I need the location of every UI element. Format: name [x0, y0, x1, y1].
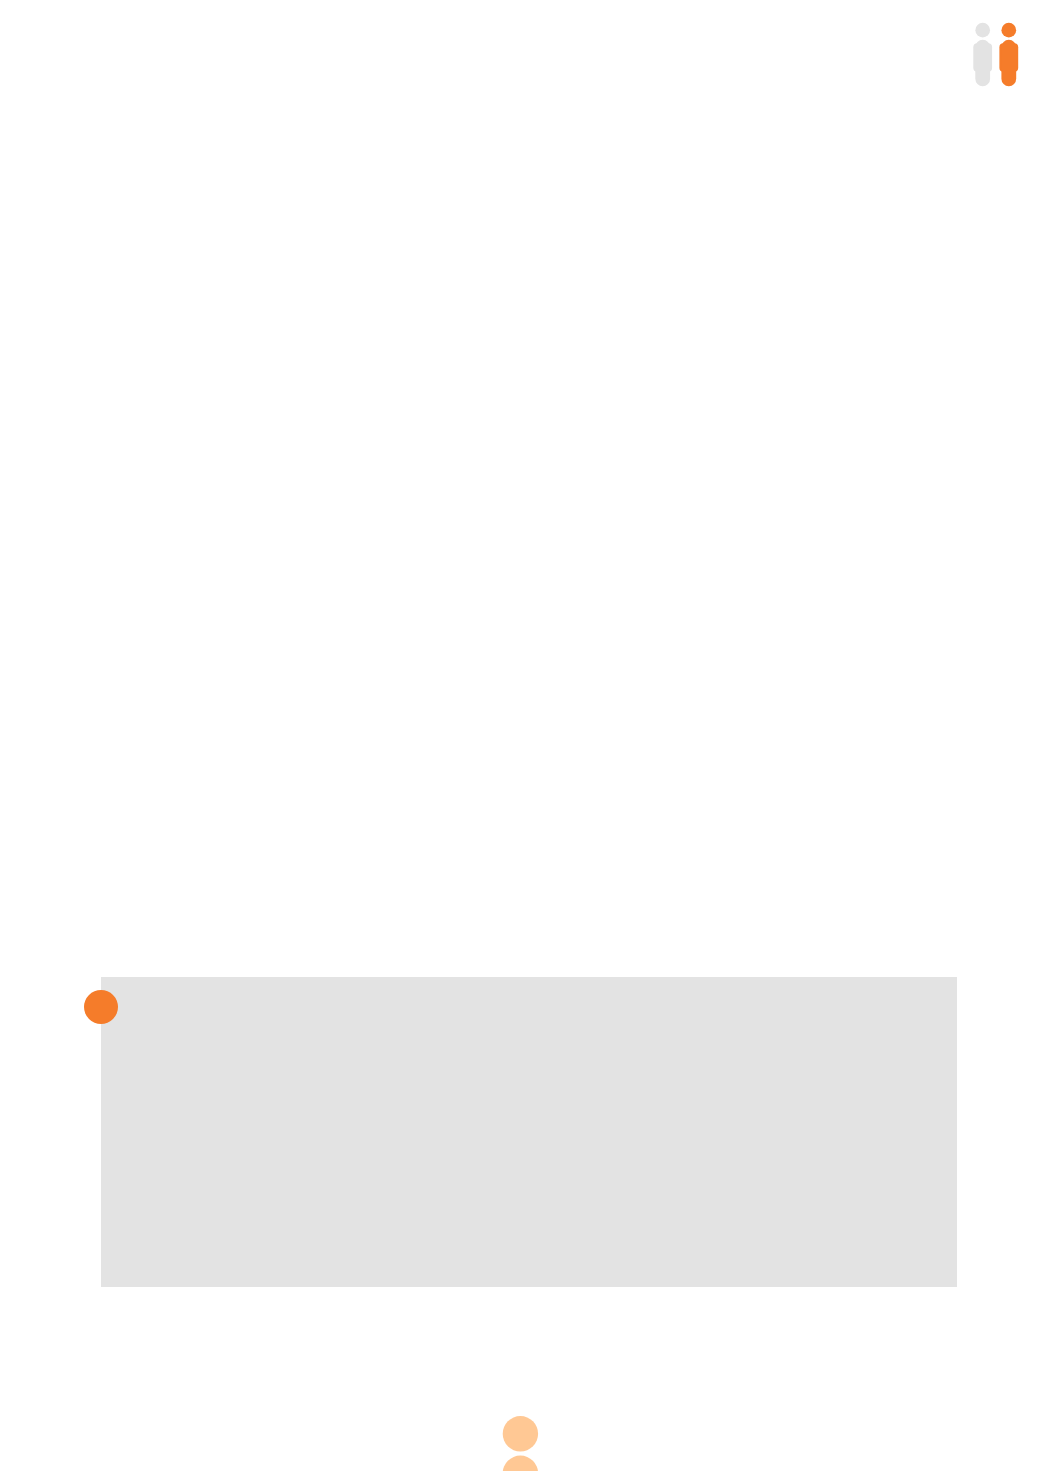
button[interactable]: Status — [84, 990, 118, 1024]
button[interactable]: Content — [101, 977, 957, 1287]
button[interactable]: Contacts — [960, 12, 1036, 96]
button[interactable]: Profile — [440, 1400, 600, 1471]
